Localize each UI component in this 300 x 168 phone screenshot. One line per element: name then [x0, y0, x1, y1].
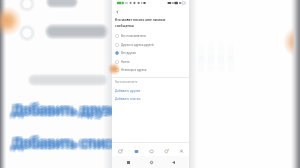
- staticText: Добавить список: [12, 135, 126, 153]
- staticText: Добавить друзей: [9, 100, 124, 118]
- staticText: Добавить списки: [115, 97, 141, 101]
- staticText: Добавить друзей: [13, 100, 128, 118]
- staticText: Кто может писать мне личные сообщения: [115, 18, 166, 28]
- staticText: Добавить друзей: [13, 99, 128, 117]
- button[interactable]: Друзья и друзья друзей: [112, 40, 189, 49]
- staticText: Никто: [121, 60, 130, 64]
- staticText: Все пользователи: [121, 34, 146, 38]
- staticText: Добавить список: [12, 133, 126, 151]
- button[interactable]: Все друзья: [112, 48, 189, 57]
- staticText: Добавить список: [11, 133, 125, 151]
- staticText: Добавить друзей: [11, 102, 126, 120]
- staticText: Добавить список: [10, 136, 124, 154]
- button[interactable]: Сообщения: [128, 143, 144, 156]
- staticText: Добавить список: [10, 134, 124, 152]
- other: Home: [150, 161, 153, 164]
- button[interactable]: Никто: [112, 57, 189, 66]
- staticText: Друзья и друзья друзей: [121, 43, 154, 47]
- staticText: Добавить список: [10, 132, 124, 150]
- button[interactable]: Некоторые друзья: [112, 65, 189, 74]
- staticText: Некоторые друзья: [121, 68, 147, 72]
- staticText: Добавить друзей: [14, 101, 129, 119]
- staticText: Добавить друзей: [10, 101, 125, 119]
- staticText: Добавить друзей: [11, 100, 126, 118]
- button[interactable]: Recent apps: [122, 159, 134, 165]
- staticText: Добавить список: [13, 136, 127, 154]
- staticText: Добавить список: [13, 132, 127, 150]
- staticText: Добавить список: [14, 132, 128, 150]
- staticText: Добавить друзей: [12, 102, 127, 120]
- staticText: Добавить друзей: [14, 101, 129, 119]
- staticText: Добавить друзей: [9, 102, 124, 120]
- staticText: Кого исключить: [115, 80, 138, 84]
- staticText: Добавить друзей: [13, 102, 128, 120]
- button[interactable]: Новости: [112, 143, 128, 156]
- staticText: Добавить друзей: [115, 89, 141, 93]
- button[interactable]: Все пользователи: [112, 31, 189, 40]
- staticText: Добавить друзей: [12, 100, 127, 118]
- button[interactable]: Профиль: [174, 143, 189, 156]
- staticText: Добавить список: [15, 134, 129, 152]
- staticText: Добавить друзей: [14, 99, 129, 117]
- other: Back: [172, 161, 175, 164]
- staticText: Добавить друзей: [15, 101, 130, 119]
- button[interactable]: Home: [145, 159, 157, 165]
- staticText: Добавить список: [14, 134, 128, 152]
- staticText: Добавить друзей: [10, 103, 125, 121]
- staticText: Добавить список: [13, 135, 127, 153]
- button[interactable]: Уведомления: [144, 143, 159, 156]
- staticText: Добавить друзей: [13, 103, 128, 121]
- staticText: Добавить список: [14, 136, 128, 154]
- staticText: Добавить список: [14, 134, 128, 152]
- button[interactable]: Back: [167, 159, 179, 165]
- staticText: Добавить друзей: [14, 103, 129, 121]
- button[interactable]: Back: [113, 8, 120, 15]
- staticText: Все друзья: [121, 51, 136, 55]
- button[interactable]: Клипы: [159, 143, 174, 156]
- button[interactable]: Добавить списки: [112, 95, 189, 102]
- staticText: Добавить список: [11, 135, 125, 153]
- staticText: Добавить друзей: [10, 99, 125, 117]
- staticText: Добавить список: [9, 133, 123, 151]
- button[interactable]: Добавить друзей: [112, 87, 189, 94]
- staticText: Добавить список: [13, 133, 127, 151]
- staticText: Добавить список: [9, 135, 123, 153]
